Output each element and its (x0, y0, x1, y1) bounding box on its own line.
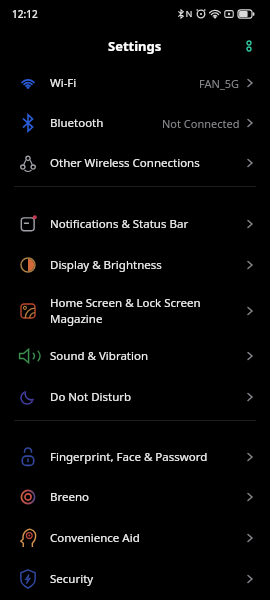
staticText: Do Not Disturb (50, 389, 132, 405)
button[interactable]: Bluetooth (0, 103, 270, 143)
button[interactable]: Wi-Fi (0, 63, 270, 103)
button[interactable]: Convenience Aid (0, 517, 270, 558)
button[interactable] (243, 40, 255, 52)
staticText: Home Screen & Lock Screen (50, 295, 201, 311)
button[interactable]: Home Screen & Lock Screen (0, 285, 270, 336)
button[interactable]: Fingerprint, Face & Password (0, 437, 270, 477)
staticText: Not Connected (162, 116, 240, 131)
staticText: FAN_5G (199, 76, 240, 91)
staticText: Wi-Fi (50, 75, 77, 91)
staticText: Fingerprint, Face & Password (50, 449, 208, 465)
staticText: Bluetooth (50, 115, 104, 131)
staticText: Security (50, 571, 94, 587)
staticText: Magazine (50, 311, 103, 327)
staticText: Sound & Vibration (50, 348, 149, 364)
button[interactable]: Do Not Disturb (0, 376, 270, 417)
button[interactable]: Display & Brightness (0, 244, 270, 285)
staticText: Notifications & Status Bar (50, 216, 189, 232)
button[interactable]: Notifications & Status Bar (0, 204, 270, 244)
staticText: Settings (108, 37, 162, 55)
button[interactable]: Sound & Vibration (0, 336, 270, 376)
button[interactable]: Breeno (0, 477, 270, 517)
staticText: Convenience Aid (50, 530, 140, 546)
staticText: Breeno (50, 489, 90, 505)
staticText: Display & Brightness (50, 257, 162, 273)
button[interactable]: Security (0, 558, 270, 599)
staticText: 12:12 (12, 7, 38, 21)
staticText: Other Wireless Connections (50, 155, 200, 171)
button[interactable]: Other Wireless Connections (0, 143, 270, 183)
